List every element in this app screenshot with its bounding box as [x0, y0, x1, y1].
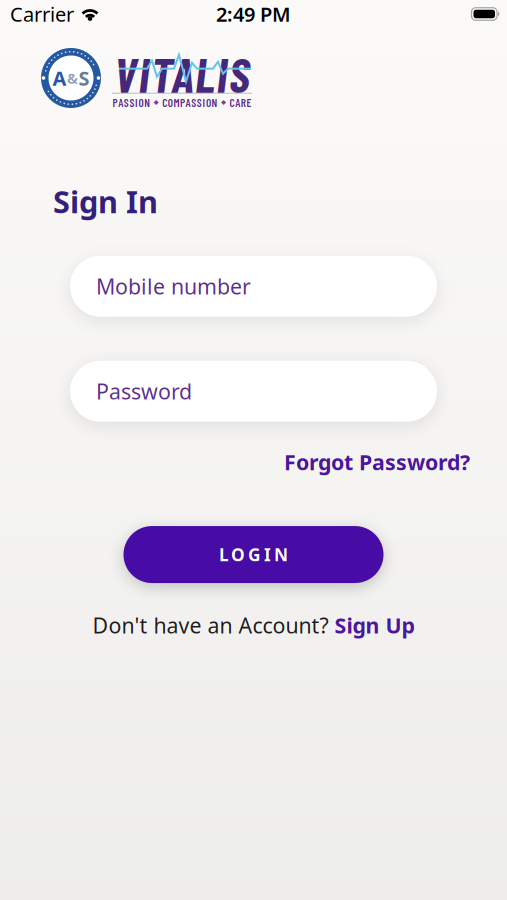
staticText: VITALIS	[114, 45, 250, 102]
staticText: LOGIN	[219, 543, 288, 566]
staticText: Sign Up	[334, 611, 414, 639]
staticText: Sign In	[53, 181, 158, 222]
staticText: &	[67, 68, 78, 88]
staticText: Forgot Password?	[284, 448, 470, 476]
staticText: CARE	[230, 96, 251, 109]
staticText: Mobile number	[96, 272, 251, 300]
staticText: Don't have an Account?	[92, 611, 328, 639]
staticText: Carrier	[10, 1, 74, 27]
staticText: A	[52, 65, 66, 91]
button[interactable]: Mobile number	[70, 256, 437, 317]
staticText: PASSION	[113, 96, 150, 109]
staticText: 2:49 PM	[216, 1, 291, 27]
button[interactable]: Sign Up	[334, 611, 414, 639]
button[interactable]: Forgot Password?	[284, 448, 470, 476]
button[interactable]: Password	[70, 361, 437, 422]
staticText: Password	[96, 377, 192, 405]
staticText: COMPASSION	[162, 96, 218, 109]
staticText: S	[78, 65, 89, 91]
button[interactable]: LOGIN	[123, 526, 383, 583]
